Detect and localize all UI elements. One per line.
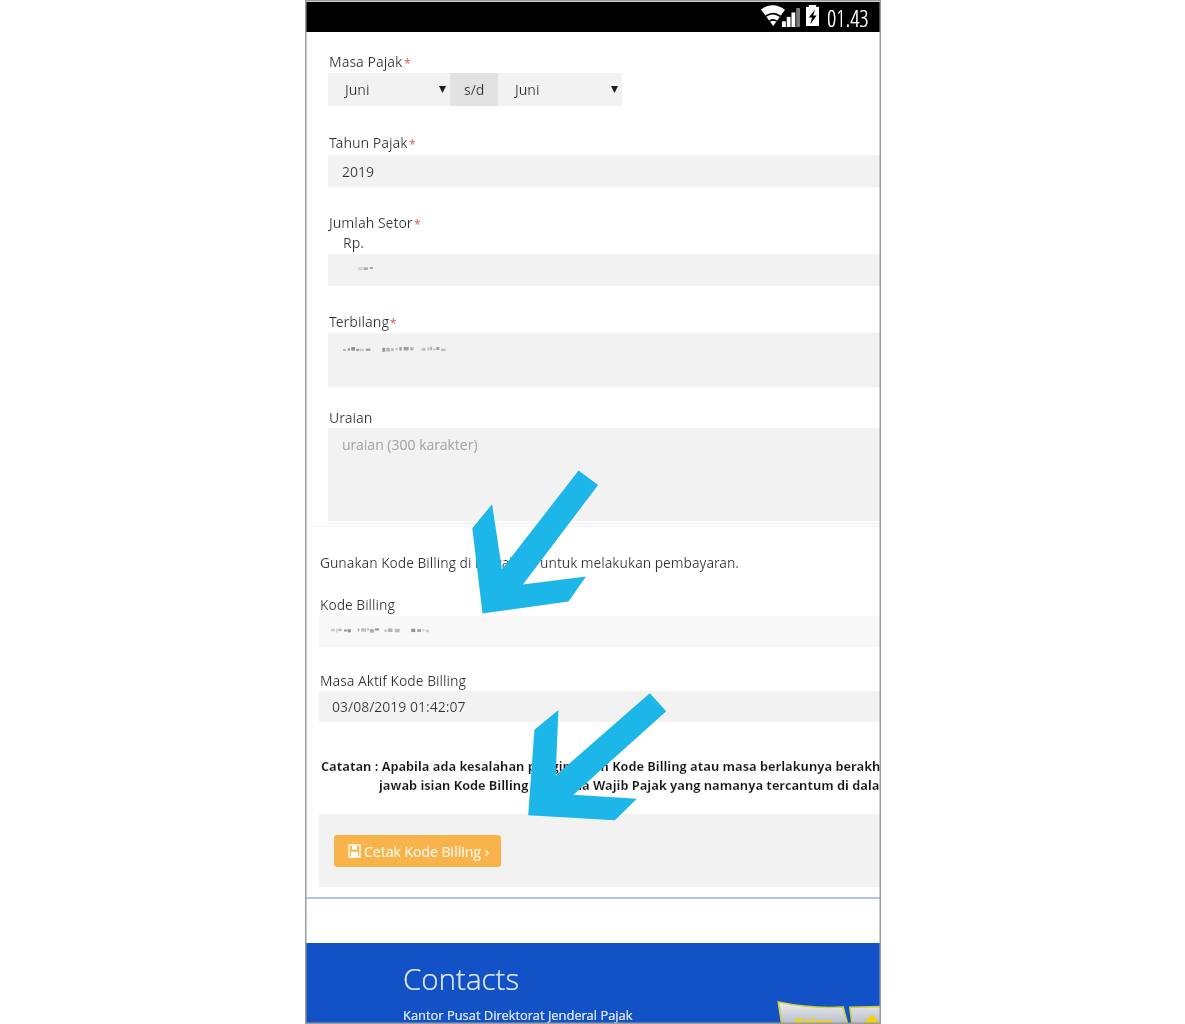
- staticText: Uraian: [329, 408, 373, 427]
- other: Battery charging: [806, 5, 819, 26]
- staticText: Terbilang: [329, 312, 390, 331]
- button[interactable]: 2019: [328, 155, 881, 187]
- staticText: 03/08/2019 01:42:07: [332, 697, 466, 716]
- staticText: Masa Pajak: [329, 52, 403, 71]
- staticText: jawab isian Kode Billing ada pada Wajib …: [379, 776, 881, 793]
- staticText: Kantor Pusat Direktorat Jenderal Pajak: [403, 1006, 633, 1024]
- staticText: Juni: [515, 80, 540, 99]
- button[interactable]: [319, 691, 881, 722]
- staticText: Contacts: [403, 958, 520, 998]
- button[interactable]: Juni: [328, 73, 450, 106]
- staticText: *: [409, 136, 416, 152]
- staticText: Catatan : Apabila ada kesalahan penginpu…: [321, 757, 881, 774]
- staticText: Juni: [345, 80, 370, 99]
- button[interactable]: [328, 428, 881, 521]
- staticText: s/d: [464, 80, 485, 99]
- staticText: Kring: [794, 1012, 832, 1024]
- staticText: Masa Aktif Kode Billing: [320, 671, 467, 690]
- staticText: Kode Billing: [320, 595, 395, 614]
- staticText: 2019: [342, 162, 375, 181]
- staticText: 01.43: [827, 2, 869, 33]
- staticText: Tahun Pajak: [329, 133, 408, 152]
- button[interactable]: Cetak Kode Billing ›: [334, 835, 501, 867]
- staticText: Jumlah Setor: [329, 213, 413, 232]
- staticText: *: [390, 315, 397, 331]
- button[interactable]: Juni: [498, 73, 622, 106]
- staticText: *: [414, 216, 421, 232]
- other: Cellular signal: [782, 8, 800, 27]
- staticText: uraian (300 karakter): [342, 435, 478, 454]
- staticText: Gunakan Kode Billing di bawah ini untuk …: [320, 553, 739, 572]
- staticText: Cetak Kode Billing ›: [364, 842, 489, 861]
- button[interactable]: [328, 254, 881, 286]
- button[interactable]: s/d: [450, 73, 498, 106]
- button[interactable]: [328, 333, 881, 387]
- staticText: Rp.: [343, 233, 364, 252]
- other: Wi-Fi signal: [760, 6, 785, 26]
- staticText: *: [404, 55, 411, 71]
- button[interactable]: [319, 616, 881, 647]
